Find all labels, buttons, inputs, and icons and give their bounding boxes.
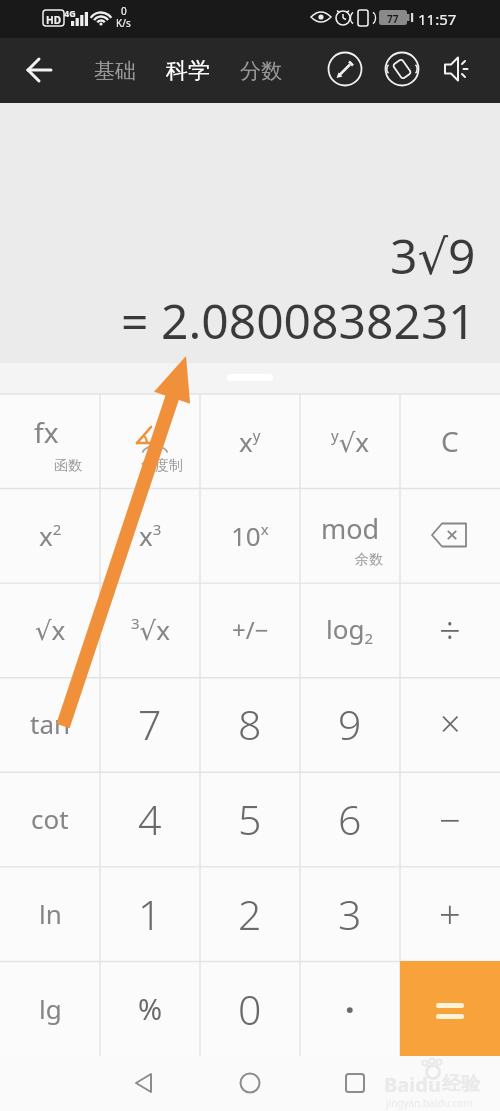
- button[interactable]: −: [400, 771, 500, 866]
- button[interactable]: 10x: [200, 488, 300, 582]
- staticText: jingyan.baidu.com: [386, 1096, 473, 1110]
- staticText: 0: [121, 4, 127, 18]
- staticText: 分数: [240, 58, 282, 84]
- staticText: 10x: [231, 518, 269, 553]
- button[interactable]: 3√x: [100, 582, 200, 676]
- button[interactable]: ÷: [400, 582, 500, 676]
- staticText: = 2.0800838231: [121, 288, 476, 353]
- button[interactable]: 6: [300, 771, 400, 866]
- button[interactable]: 分数: [234, 38, 288, 103]
- button[interactable]: [327, 51, 363, 87]
- button[interactable]: ×: [400, 676, 500, 771]
- button[interactable]: 0: [200, 961, 300, 1056]
- staticText: 1: [138, 886, 162, 942]
- staticText: K/s: [116, 16, 131, 30]
- staticText: x2: [39, 518, 62, 553]
- staticText: 5: [238, 791, 262, 847]
- button[interactable]: lg: [0, 961, 100, 1056]
- button[interactable]: 基础: [88, 38, 142, 103]
- staticText: 余数: [355, 551, 383, 569]
- staticText: lg: [39, 991, 62, 1026]
- staticText: fx: [34, 413, 59, 451]
- staticText: Baidu: [384, 1071, 441, 1098]
- staticText: 角度制: [141, 457, 183, 475]
- button[interactable]: 1: [100, 866, 200, 961]
- staticText: tan: [30, 706, 71, 741]
- staticText: xy: [239, 424, 261, 459]
- button[interactable]: [400, 488, 500, 582]
- button[interactable]: [384, 51, 420, 87]
- staticText: HD: [46, 13, 61, 27]
- button[interactable]: 8: [200, 676, 300, 771]
- staticText: %: [138, 989, 163, 1028]
- staticText: √x: [35, 612, 66, 647]
- button[interactable]: [333, 1056, 500, 1111]
- staticText: 基础: [94, 58, 136, 84]
- button[interactable]: 科学: [160, 38, 216, 103]
- button[interactable]: cot: [0, 771, 100, 866]
- button[interactable]: mod: [300, 488, 400, 582]
- staticText: −: [439, 793, 461, 845]
- button[interactable]: [166, 1056, 333, 1111]
- button[interactable]: 5: [200, 771, 300, 866]
- button[interactable]: 角度制: [100, 394, 200, 488]
- button[interactable]: [19, 50, 59, 90]
- button[interactable]: 3: [300, 866, 400, 961]
- button[interactable]: [0, 1056, 166, 1111]
- staticText: ÷: [439, 603, 461, 655]
- staticText: +/−: [232, 613, 269, 646]
- button[interactable]: 9: [300, 676, 400, 771]
- staticText: cot: [31, 801, 69, 836]
- button[interactable]: C: [400, 394, 500, 488]
- button[interactable]: x3: [100, 488, 200, 582]
- button[interactable]: %: [100, 961, 200, 1056]
- staticText: y√x: [331, 424, 369, 459]
- staticText: 6: [338, 791, 362, 847]
- button[interactable]: ·: [300, 961, 400, 1056]
- button[interactable]: √x: [0, 582, 100, 676]
- staticText: C: [441, 422, 459, 460]
- staticText: +: [439, 888, 461, 940]
- staticText: 经验: [442, 1072, 480, 1096]
- staticText: 3√x: [131, 612, 170, 647]
- button[interactable]: fx: [0, 394, 100, 488]
- staticText: 2: [238, 886, 262, 942]
- staticText: 7: [138, 696, 162, 752]
- button[interactable]: 2: [200, 866, 300, 961]
- button[interactable]: y√x: [300, 394, 400, 488]
- staticText: 函数: [54, 457, 82, 475]
- staticText: 11:57: [418, 9, 457, 29]
- button[interactable]: +/−: [200, 582, 300, 676]
- button[interactable]: ln: [0, 866, 100, 961]
- button[interactable]: [400, 961, 500, 1056]
- staticText: ×: [440, 699, 461, 748]
- staticText: 4G: [64, 7, 76, 19]
- staticText: 0: [238, 981, 262, 1037]
- button[interactable]: x2: [0, 488, 100, 582]
- staticText: ln: [39, 896, 62, 931]
- staticText: 3: [338, 886, 362, 942]
- staticText: ·: [345, 986, 355, 1032]
- staticText: 9: [338, 696, 362, 752]
- staticText: 科学: [166, 57, 210, 85]
- staticText: x3: [139, 518, 162, 553]
- button[interactable]: 7: [100, 676, 200, 771]
- button[interactable]: tan: [0, 676, 100, 771]
- staticText: 77: [387, 12, 399, 26]
- button[interactable]: [437, 51, 473, 87]
- button[interactable]: 4: [100, 771, 200, 866]
- staticText: log2: [326, 611, 374, 648]
- staticText: 4: [138, 791, 162, 847]
- staticText: 3√9: [390, 223, 476, 288]
- button[interactable]: +: [400, 866, 500, 961]
- staticText: 8: [238, 696, 262, 752]
- button[interactable]: xy: [200, 394, 300, 488]
- staticText: mod: [321, 510, 380, 547]
- button[interactable]: log2: [300, 582, 400, 676]
